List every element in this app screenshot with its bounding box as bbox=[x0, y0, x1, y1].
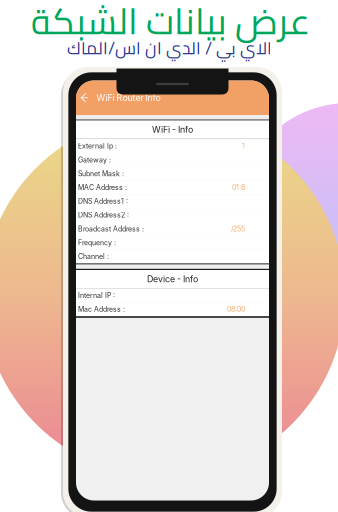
button[interactable]: Gateway : bbox=[76, 153, 269, 167]
button[interactable]: Frequency : bbox=[76, 236, 269, 250]
staticText: Frequency : bbox=[78, 238, 116, 247]
button[interactable]: Back bbox=[76, 93, 89, 103]
button[interactable]: DNS Address1 : bbox=[76, 194, 269, 208]
staticText: الاي بي / الدي ان اس/الماك bbox=[66, 32, 271, 64]
staticText: Gateway : bbox=[78, 156, 111, 164]
staticText: WiFi Router Info bbox=[96, 92, 160, 103]
staticText: WiFi - Info bbox=[152, 124, 193, 135]
button[interactable]: External Ip : bbox=[76, 139, 269, 153]
staticText: External Ip : bbox=[78, 142, 117, 150]
staticText: 01:8 bbox=[232, 183, 245, 192]
staticText: DNS Address2 : bbox=[78, 211, 129, 219]
staticText: MAC Address : bbox=[78, 183, 127, 192]
staticText: Internal IP : bbox=[78, 291, 115, 300]
button[interactable]: Mac Address : bbox=[76, 302, 269, 316]
button[interactable]: DNS Address2 : bbox=[76, 208, 269, 222]
button[interactable]: Broadcast Address : bbox=[76, 222, 269, 236]
button[interactable]: Internal IP : bbox=[76, 289, 269, 302]
staticText: /255 bbox=[231, 225, 245, 233]
staticText: Channel : bbox=[78, 252, 109, 261]
staticText: DNS Address1 : bbox=[78, 197, 128, 205]
staticText: 1 bbox=[242, 142, 245, 150]
staticText: Device - Info bbox=[147, 274, 198, 284]
staticText: عرض بيانات الشبكة bbox=[30, 0, 309, 55]
button[interactable]: MAC Address : bbox=[76, 181, 269, 194]
button[interactable]: Channel : bbox=[76, 250, 269, 263]
staticText: Broadcast Address : bbox=[78, 225, 144, 233]
staticText: Mac Address : bbox=[78, 305, 125, 313]
staticText: 08:00 bbox=[227, 305, 245, 313]
button[interactable]: Subnet Mask : bbox=[76, 167, 269, 181]
staticText: Subnet Mask : bbox=[78, 169, 124, 178]
